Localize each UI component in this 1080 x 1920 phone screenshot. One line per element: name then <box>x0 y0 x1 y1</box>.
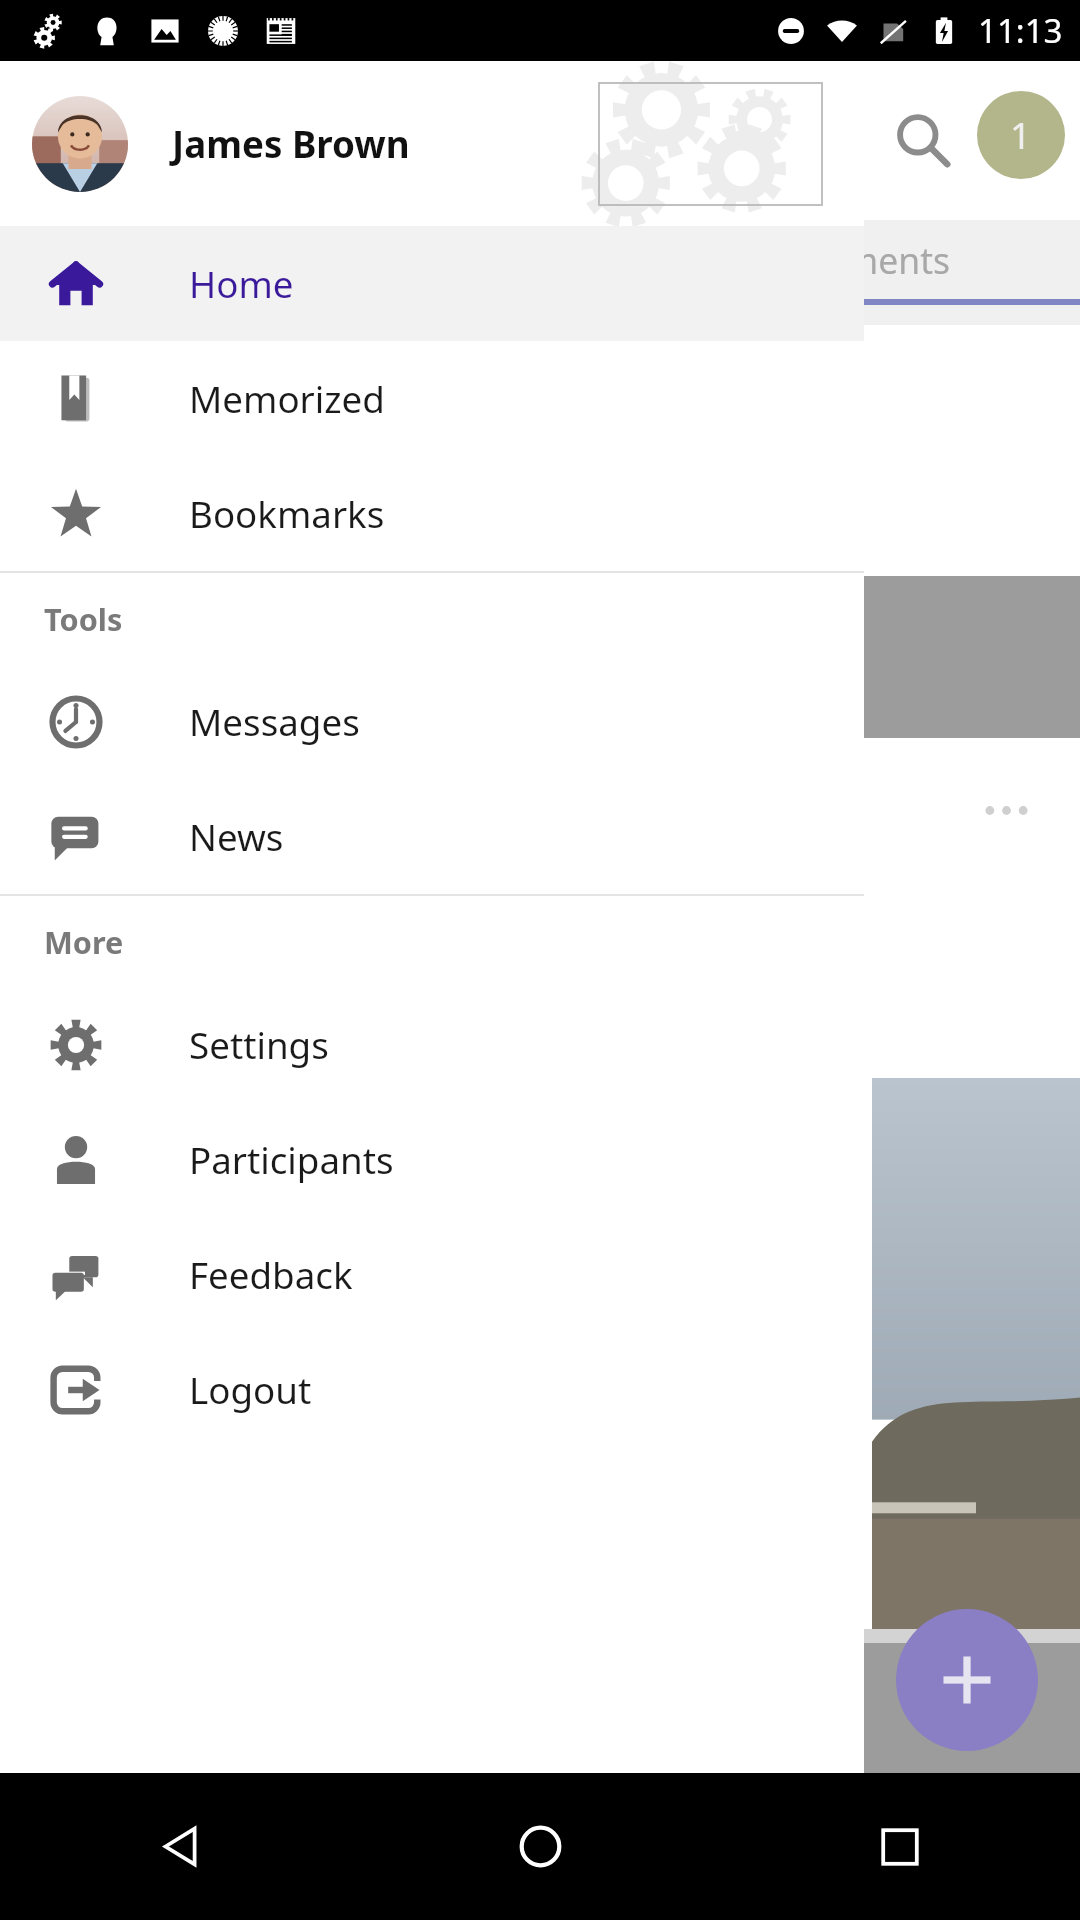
button[interactable]: Back <box>0 1773 360 1920</box>
button[interactable]: Feedback <box>0 1217 864 1332</box>
staticText: James Brown <box>172 119 410 169</box>
button[interactable]: Bookmarks <box>0 456 864 571</box>
staticText: Home <box>189 259 294 309</box>
staticText: News <box>189 812 284 862</box>
staticText: Tools <box>44 598 123 640</box>
staticText: ments <box>845 236 950 284</box>
button[interactable]: Home <box>360 1773 720 1920</box>
staticText: Participants <box>189 1135 394 1185</box>
button[interactable]: Logout <box>0 1332 864 1447</box>
button[interactable]: Home <box>0 226 864 341</box>
button[interactable]: Recents <box>720 1773 1080 1920</box>
staticText: Logout <box>189 1365 312 1415</box>
staticText: More <box>44 921 124 963</box>
button[interactable]: Memorized <box>0 341 864 456</box>
staticText: 11:13 <box>978 8 1063 53</box>
staticText: Memorized <box>189 374 385 424</box>
button[interactable]: News <box>0 779 864 894</box>
button[interactable]: Settings <box>0 987 864 1102</box>
staticText: Settings <box>189 1020 329 1070</box>
staticText: Messages <box>189 697 360 747</box>
button[interactable]: Search <box>879 96 965 182</box>
button[interactable]: Messages <box>0 664 864 779</box>
button[interactable]: Add <box>896 1609 1038 1751</box>
button[interactable]: Participants <box>0 1102 864 1217</box>
staticText: Bookmarks <box>189 489 385 539</box>
staticText: Feedback <box>189 1250 353 1300</box>
staticText: 1 <box>1010 110 1032 160</box>
button[interactable]: 1 <box>977 91 1065 179</box>
button[interactable]: More options <box>967 771 1045 849</box>
button[interactable]: James Brown <box>0 61 864 226</box>
